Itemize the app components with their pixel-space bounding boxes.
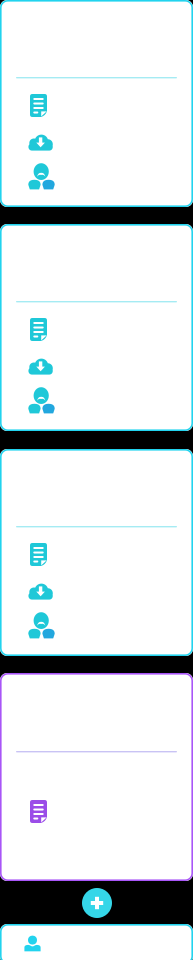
- button[interactable]: [0, 673, 193, 881]
- button[interactable]: Profile: [0, 924, 193, 960]
- button[interactable]: [0, 449, 193, 656]
- button[interactable]: [0, 224, 193, 431]
- button[interactable]: Add: [82, 888, 112, 918]
- button[interactable]: [0, 0, 193, 207]
